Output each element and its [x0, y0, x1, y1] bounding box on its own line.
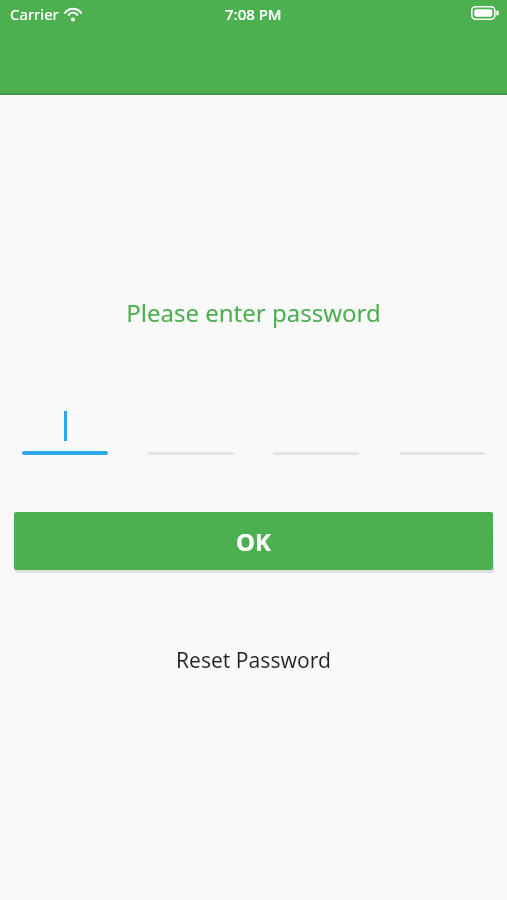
- staticText: Please enter password: [0, 296, 507, 329]
- staticText: Carrier: [10, 4, 59, 24]
- button[interactable]: Reset Password: [160, 638, 347, 683]
- button[interactable]: OK: [14, 512, 493, 570]
- button[interactable]: Password digit field: [22, 395, 108, 455]
- button[interactable]: Password digit field: [148, 395, 234, 455]
- button[interactable]: Password digit field: [273, 395, 359, 455]
- button[interactable]: Password digit field: [399, 395, 485, 455]
- staticText: 7:08 PM: [225, 4, 282, 24]
- staticText: Reset Password: [176, 646, 331, 675]
- staticText: OK: [236, 525, 271, 558]
